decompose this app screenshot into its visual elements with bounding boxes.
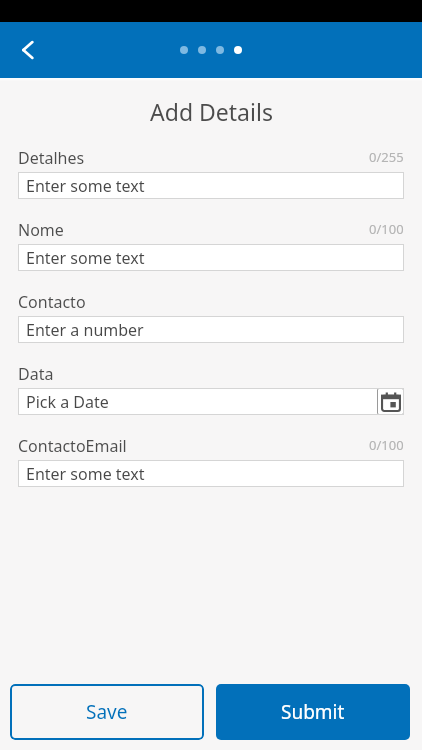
staticText: Submit [281,699,345,725]
button[interactable]: Enter a number [18,316,404,343]
button[interactable]: Pick a date [377,388,404,415]
staticText: Contacto [18,291,86,311]
staticText: Detalhes [18,147,85,167]
button[interactable]: Enter some text [18,244,404,271]
staticText: Pick a Date [26,391,109,413]
staticText: ContactoEmail [18,435,127,455]
staticText: Add Details [150,96,273,127]
button[interactable]: Pick a Date [18,388,404,415]
staticText: Enter a number [26,319,144,341]
button[interactable]: Back [11,33,45,67]
button[interactable]: Save [10,684,204,740]
staticText: Nome [18,219,64,239]
staticText: Save [86,699,128,725]
button[interactable]: Enter some text [18,172,404,199]
staticText: 0/100 [369,220,404,238]
button[interactable]: Submit [216,684,410,740]
staticText: 0/255 [369,148,404,166]
staticText: Enter some text [26,463,145,485]
staticText: Enter some text [26,247,145,269]
staticText: Data [18,363,54,383]
button[interactable]: Enter some text [18,460,404,487]
staticText: 0/100 [369,436,404,454]
staticText: Enter some text [26,175,145,197]
